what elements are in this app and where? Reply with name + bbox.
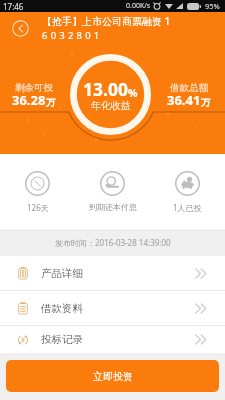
staticText: 借款资料: [41, 302, 83, 315]
staticText: 借款总额: [170, 82, 208, 94]
staticText: 13.00: [83, 77, 128, 101]
staticText: %: [128, 86, 138, 100]
staticText: 17:46: [3, 1, 24, 12]
staticText: 0.00K/s: [126, 1, 151, 11]
staticText: 36.28: [12, 91, 46, 109]
staticText: 1人已投: [173, 202, 202, 213]
staticText: 95%: [205, 1, 220, 11]
staticText: 6032801: [42, 29, 103, 42]
staticText: 立即投资: [93, 370, 133, 383]
staticText: 发布时间：2016-03-28 14:39:00: [55, 237, 171, 248]
button[interactable]: 借款资料: [0, 291, 225, 325]
staticText: 剩余可投: [15, 82, 53, 94]
staticText: 产品详细: [41, 267, 83, 280]
staticText: 【抢手】上市公司商票融资 1: [42, 14, 171, 28]
staticText: 万: [46, 97, 56, 109]
button[interactable]: Back: [12, 20, 29, 37]
button[interactable]: 产品详细: [0, 256, 225, 290]
staticText: 年化收益: [91, 99, 131, 112]
staticText: 到期还本付息: [89, 202, 137, 212]
staticText: 36.41: [167, 91, 201, 109]
staticText: 126天: [27, 202, 49, 213]
staticText: 投标记录: [41, 333, 83, 346]
staticText: 万: [201, 97, 211, 109]
button[interactable]: 立即投资: [6, 360, 219, 392]
button[interactable]: 投标记录: [0, 326, 225, 353]
